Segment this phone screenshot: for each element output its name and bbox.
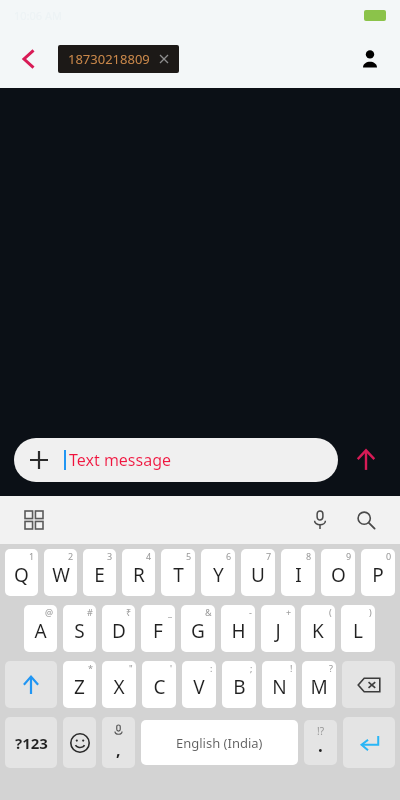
button[interactable]: @ bbox=[24, 605, 57, 652]
button[interactable]: 0 bbox=[361, 549, 395, 596]
button[interactable]: * bbox=[63, 661, 96, 708]
staticText: English (India) bbox=[176, 734, 263, 752]
button[interactable]: 9 bbox=[321, 549, 355, 596]
staticText: + bbox=[286, 606, 292, 618]
staticText: I bbox=[295, 562, 302, 588]
staticText: ) bbox=[369, 606, 372, 618]
button[interactable]: 2 bbox=[44, 549, 77, 596]
button[interactable]: English (India) bbox=[141, 720, 298, 765]
button[interactable]: 3 bbox=[83, 549, 116, 596]
staticText: A bbox=[34, 618, 47, 644]
button[interactable]: Keyboard options bbox=[18, 504, 50, 536]
staticText: ( bbox=[329, 606, 332, 618]
button[interactable] bbox=[5, 661, 57, 708]
staticText: 6 bbox=[226, 550, 232, 562]
button[interactable]: 5 bbox=[161, 549, 195, 596]
staticText: 8 bbox=[306, 550, 312, 562]
staticText: D bbox=[112, 618, 126, 644]
button[interactable]: ?123 bbox=[5, 717, 57, 768]
staticText: V bbox=[193, 674, 205, 700]
button[interactable] bbox=[343, 717, 395, 768]
button[interactable]: , bbox=[102, 717, 135, 768]
staticText: - bbox=[249, 606, 252, 618]
button[interactable]: ? bbox=[302, 661, 336, 708]
staticText: 3 bbox=[107, 550, 113, 562]
staticText: B bbox=[233, 674, 246, 700]
button[interactable]: 18730218809 bbox=[58, 45, 179, 73]
staticText: 18730218809 bbox=[68, 50, 150, 68]
button[interactable]: ' bbox=[142, 661, 176, 708]
staticText: 4 bbox=[146, 550, 152, 562]
staticText: 5 bbox=[186, 550, 192, 562]
staticText: U bbox=[251, 562, 265, 588]
staticText: J bbox=[275, 618, 281, 644]
staticText: S bbox=[74, 618, 85, 644]
staticText: O bbox=[331, 562, 346, 588]
staticText: N bbox=[272, 674, 287, 700]
button[interactable]: : bbox=[182, 661, 216, 708]
staticText: 2 bbox=[68, 550, 74, 562]
staticText: @ bbox=[45, 606, 54, 618]
button[interactable]: & bbox=[181, 605, 215, 652]
button[interactable]: Voice input bbox=[302, 502, 338, 538]
staticText: 0 bbox=[386, 550, 392, 562]
staticText: 1 bbox=[29, 550, 35, 562]
staticText: !? bbox=[317, 724, 325, 738]
staticText: . bbox=[318, 734, 323, 757]
staticText: _ bbox=[168, 606, 172, 618]
button[interactable]: + bbox=[261, 605, 295, 652]
button[interactable]: 6 bbox=[201, 549, 235, 596]
button[interactable]: Add attachment bbox=[14, 438, 338, 482]
button[interactable]: ; bbox=[222, 661, 256, 708]
staticText: L bbox=[353, 618, 363, 644]
staticText: & bbox=[205, 606, 212, 618]
staticText: 7 bbox=[266, 550, 272, 562]
staticText: ?123 bbox=[15, 733, 48, 753]
button[interactable]: ( bbox=[301, 605, 335, 652]
button[interactable]: Contact details bbox=[350, 39, 390, 79]
staticText: G bbox=[191, 618, 205, 644]
button[interactable]: - bbox=[221, 605, 255, 652]
staticText: # bbox=[87, 606, 93, 618]
staticText: ; bbox=[250, 662, 253, 674]
button[interactable]: Search bbox=[348, 502, 384, 538]
button[interactable]: ) bbox=[341, 605, 375, 652]
staticText: , bbox=[116, 739, 121, 761]
staticText: C bbox=[153, 674, 166, 700]
button[interactable]: ! bbox=[262, 661, 296, 708]
staticText: T bbox=[173, 562, 184, 588]
staticText: : bbox=[210, 662, 213, 674]
staticText: E bbox=[94, 562, 105, 588]
staticText: M bbox=[310, 674, 328, 700]
button[interactable]: 4 bbox=[122, 549, 155, 596]
staticText: W bbox=[52, 562, 70, 588]
button[interactable]: # bbox=[63, 605, 96, 652]
staticText: H bbox=[231, 618, 246, 644]
staticText: Q bbox=[14, 562, 29, 588]
staticText: Text message bbox=[69, 449, 172, 471]
staticText: ' bbox=[170, 662, 173, 674]
button[interactable]: 8 bbox=[281, 549, 315, 596]
button[interactable]: ₹ bbox=[102, 605, 135, 652]
staticText: ? bbox=[329, 662, 333, 674]
staticText: Y bbox=[213, 562, 224, 588]
button[interactable]: Back bbox=[8, 39, 48, 79]
button[interactable]: _ bbox=[141, 605, 175, 652]
button[interactable]: !? bbox=[304, 720, 337, 765]
button[interactable]: " bbox=[102, 661, 136, 708]
button[interactable] bbox=[63, 717, 96, 768]
staticText: * bbox=[88, 662, 93, 674]
button[interactable]: Send bbox=[346, 440, 386, 480]
staticText: Z bbox=[74, 674, 85, 700]
other: Add attachment bbox=[28, 449, 50, 471]
staticText: ! bbox=[290, 662, 293, 674]
staticText: X bbox=[113, 674, 125, 700]
button[interactable]: 7 bbox=[241, 549, 275, 596]
button[interactable]: 1 bbox=[5, 549, 38, 596]
button[interactable] bbox=[342, 661, 395, 708]
staticText: F bbox=[153, 618, 163, 644]
staticText: K bbox=[312, 618, 324, 644]
staticText: 9 bbox=[346, 550, 352, 562]
staticText: ₹ bbox=[126, 606, 132, 618]
